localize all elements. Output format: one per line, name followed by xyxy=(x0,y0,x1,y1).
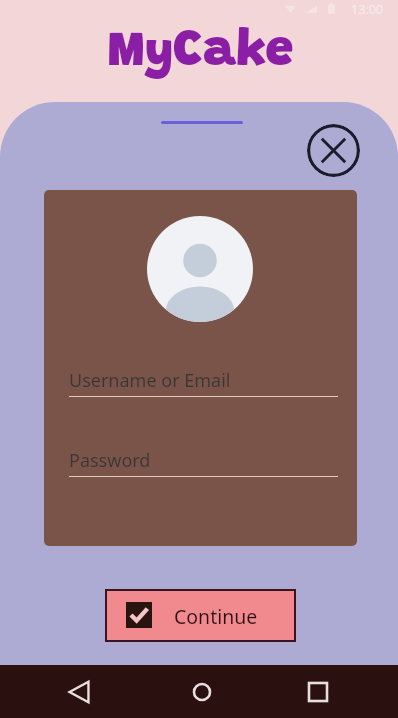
staticText: Username or Email xyxy=(69,368,231,393)
button[interactable]: Back xyxy=(46,665,111,718)
button[interactable]: Continue xyxy=(105,589,296,642)
staticText: 13:00 xyxy=(351,1,383,18)
button[interactable]: Close xyxy=(307,124,360,177)
staticText: Password xyxy=(69,448,151,473)
staticText: Continue xyxy=(174,603,258,630)
button[interactable]: Recents xyxy=(285,665,350,718)
button[interactable]: Home xyxy=(169,665,234,718)
staticText: MyCake xyxy=(107,28,295,79)
